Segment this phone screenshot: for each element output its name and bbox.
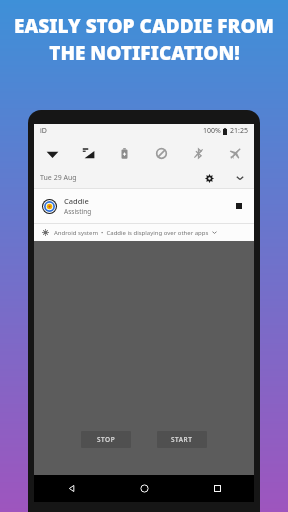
staticText: iD <box>40 126 47 136</box>
staticText: 100% <box>203 126 221 136</box>
staticText: THE NOTIFICATION! <box>49 40 240 66</box>
staticText: Assisting <box>64 207 92 216</box>
staticText: Android system • Caddie is displaying ov… <box>54 229 209 237</box>
staticText: Caddie <box>64 196 89 206</box>
button[interactable]: Mobile data <box>70 138 106 168</box>
button[interactable]: Wi-Fi <box>34 138 70 168</box>
button[interactable]: Android system <box>34 224 254 241</box>
staticText: START <box>171 435 193 444</box>
staticText: STOP <box>97 435 116 444</box>
button[interactable]: Expand <box>232 170 248 186</box>
staticText: 21:25 <box>230 126 248 136</box>
button[interactable]: Back <box>34 475 108 502</box>
button[interactable]: Caddie <box>34 189 254 223</box>
staticText: EASILY STOP CADDIE FROM <box>14 13 274 39</box>
button[interactable]: Bluetooth <box>180 138 217 168</box>
other: Android system <box>42 229 49 236</box>
button[interactable]: Do not disturb <box>143 138 180 168</box>
button[interactable]: Battery saver <box>106 138 143 168</box>
button[interactable]: Airplane mode <box>217 138 254 168</box>
staticText: Tue 29 Aug <box>40 173 77 183</box>
button[interactable]: Stop <box>232 199 246 213</box>
button[interactable]: Recent apps <box>181 475 254 502</box>
button[interactable]: Settings <box>201 170 217 186</box>
button[interactable]: Home <box>108 475 181 502</box>
button[interactable]: START <box>157 431 207 448</box>
button[interactable]: STOP <box>81 431 131 448</box>
